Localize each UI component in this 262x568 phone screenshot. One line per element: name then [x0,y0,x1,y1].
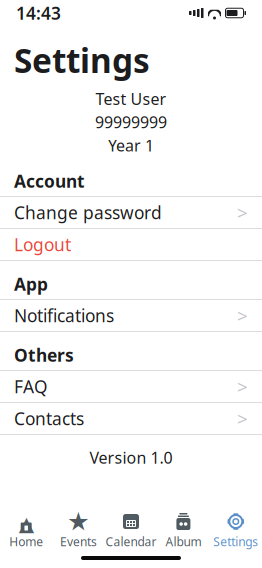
staticText: FAQ [14,375,48,398]
staticText: Test User [95,88,166,109]
staticText: Settings [14,38,150,82]
staticText: Events [60,533,97,549]
staticText: Album [165,533,201,549]
button[interactable]: Album [157,510,210,552]
button[interactable]: Change password [0,197,262,228]
staticText: App [14,272,48,295]
staticText: Account [14,169,85,192]
staticText: Logout [14,233,71,256]
staticText: Settings [213,533,258,549]
staticText: Version 1.0 [89,447,172,468]
staticText: > [237,374,248,399]
button[interactable]: Logout [0,229,262,260]
staticText: Others [14,343,74,366]
staticText: Change password [14,201,162,224]
staticText: 99999999 [95,111,167,133]
staticText: ★ [67,507,90,536]
staticText: 14:43 [16,1,61,24]
button[interactable]: FAQ [0,371,262,402]
button[interactable]: ★ [52,510,105,552]
button[interactable]: ▲ [0,510,52,552]
staticText: Contacts [14,407,84,430]
staticText: Home [9,533,43,549]
button[interactable]: Settings [210,510,262,552]
staticText: Year 1 [108,135,154,156]
button[interactable]: Notifications [0,300,262,331]
staticText: ▲ [19,512,34,535]
staticText: > [237,200,248,225]
button[interactable]: Calendar [105,510,157,552]
staticText: Calendar [105,533,156,549]
staticText: > [237,406,248,431]
button[interactable]: Contacts [0,403,262,434]
staticText: > [237,303,248,328]
staticText: Notifications [14,304,114,327]
